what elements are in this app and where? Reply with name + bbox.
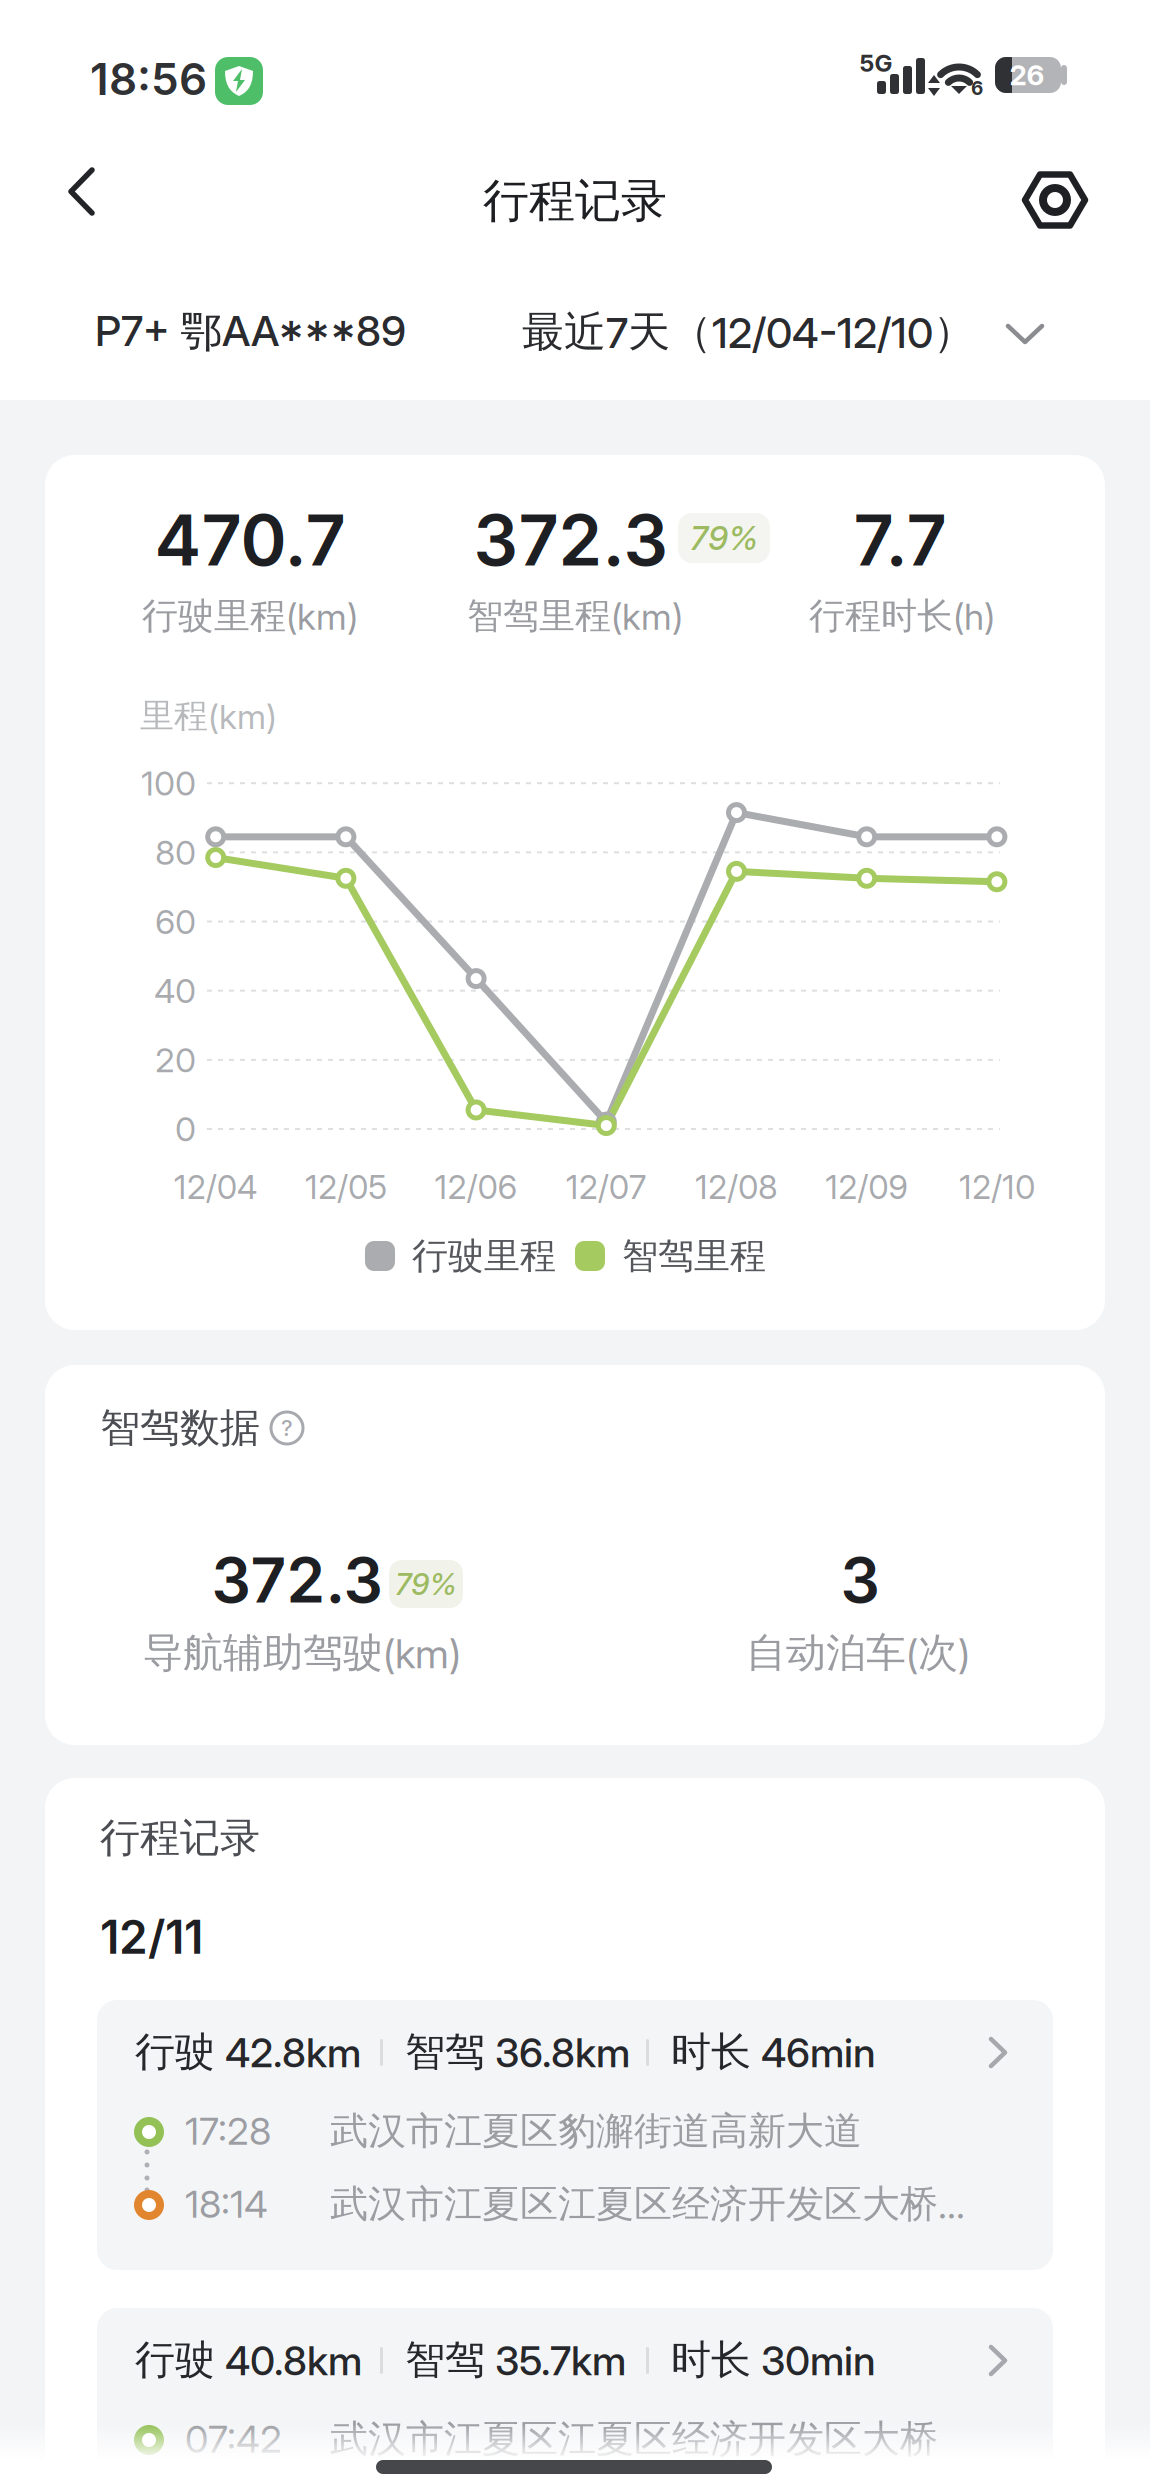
staticText: 12/05 [305, 1167, 387, 1207]
staticText: 0 [175, 1108, 196, 1149]
staticText: P7+ 鄂AA***89 [95, 305, 406, 359]
staticText: 时长 46min [671, 2027, 876, 2077]
staticText: 12/11 [100, 1909, 203, 1965]
staticText: 行驶里程 [412, 1233, 556, 1279]
staticText: 智驾里程 [622, 1233, 766, 1279]
staticText: 79% [690, 518, 758, 558]
staticText: 60 [155, 901, 196, 942]
staticText: 372.3 [473, 498, 668, 582]
staticText: 100 [141, 763, 196, 804]
staticText: 12/04 [174, 1167, 258, 1207]
staticText: 40 [154, 970, 196, 1011]
button[interactable]: P7+ 鄂AA***89 [95, 300, 415, 364]
staticText: 12/07 [566, 1167, 647, 1207]
staticText: 80 [155, 832, 196, 873]
staticText: 智驾 35.7km [405, 2335, 626, 2385]
staticText: 3 [840, 1542, 879, 1617]
staticText: 里程(km) [140, 695, 277, 737]
button[interactable] [69, 168, 115, 234]
staticText: 17:28 [185, 2108, 271, 2154]
staticText: 20 [155, 1039, 196, 1080]
staticText: 智驾 36.8km [405, 2027, 630, 2077]
staticText: 武汉市江夏区豹澥街道高新大道 [330, 2107, 862, 2155]
button[interactable]: 行驶 40.8km [97, 2308, 1053, 2490]
button[interactable]: 最近7天（12/04-12/10） [520, 298, 1045, 366]
staticText: 12/06 [435, 1167, 518, 1207]
staticText: 行程记录 [100, 1813, 260, 1863]
staticText: 行程记录 [483, 172, 667, 230]
staticText: 武汉市江夏区江夏区经济开发区大桥 [330, 2415, 938, 2463]
button[interactable]: ? [265, 1406, 309, 1450]
staticText: 79% [395, 1566, 457, 1602]
button[interactable] [1017, 162, 1093, 238]
staticText: 12/09 [825, 1167, 908, 1207]
staticText: 行驶 42.8km [135, 2027, 361, 2077]
staticText: 自动泊车(次) [746, 1628, 970, 1678]
staticText: 18:56 [90, 52, 207, 106]
staticText: 6 [971, 76, 983, 99]
staticText: 5G [859, 48, 892, 77]
staticText: 智驾里程(km) [467, 593, 683, 639]
staticText: 时长 30min [671, 2335, 876, 2385]
staticText: 7.7 [853, 498, 946, 582]
staticText: 导航辅助驾驶(km) [143, 1628, 461, 1678]
staticText: 12/08 [695, 1167, 778, 1207]
staticText: 武汉市江夏区江夏区经济开发区大桥... [330, 2180, 965, 2228]
staticText: 07:42 [185, 2416, 282, 2462]
staticText: 行驶里程(km) [142, 593, 358, 639]
staticText: 智驾数据 [100, 1403, 260, 1453]
staticText: 372.3 [211, 1542, 382, 1617]
staticText: 行程时长(h) [809, 593, 995, 639]
button[interactable]: 行驶 42.8km [97, 2000, 1053, 2270]
staticText: 行驶 40.8km [135, 2335, 362, 2385]
staticText: 26 [1009, 58, 1044, 92]
staticText: ? [281, 1415, 293, 1441]
staticText: 18:14 [185, 2181, 268, 2227]
staticText: 12/10 [959, 1167, 1035, 1207]
staticText: 470.7 [154, 498, 345, 582]
staticText: 最近7天（12/04-12/10） [522, 305, 975, 358]
